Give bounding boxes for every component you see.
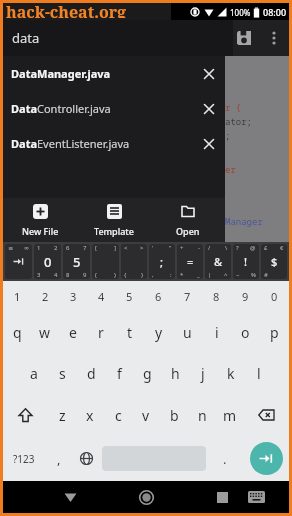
button[interactable] bbox=[244, 394, 289, 436]
button[interactable]: y bbox=[144, 312, 173, 353]
staticText: w bbox=[39, 323, 51, 342]
button[interactable]: ; bbox=[149, 244, 175, 279]
staticText: Template bbox=[94, 225, 134, 237]
button[interactable]: 5 bbox=[63, 244, 90, 279]
button[interactable] bbox=[72, 436, 101, 481]
button[interactable]: a bbox=[19, 353, 48, 394]
button[interactable] bbox=[3, 394, 48, 436]
staticText: 0 bbox=[44, 253, 52, 271]
staticText: n bbox=[198, 406, 207, 425]
button[interactable]: 2 bbox=[31, 281, 59, 312]
button[interactable]: j bbox=[189, 353, 217, 394]
button[interactable]: m bbox=[216, 394, 244, 436]
button[interactable]: e bbox=[59, 312, 87, 353]
button[interactable]: x bbox=[76, 394, 104, 436]
staticText: 4 bbox=[54, 271, 58, 279]
staticText: < bbox=[124, 244, 128, 252]
button[interactable]: 1 bbox=[3, 281, 31, 312]
button[interactable]: s bbox=[48, 353, 77, 394]
button[interactable]: ?123 bbox=[3, 436, 45, 481]
staticText: ) bbox=[114, 271, 116, 279]
button[interactable]: New File bbox=[3, 198, 77, 242]
button[interactable] bbox=[194, 129, 224, 159]
button[interactable]: k bbox=[217, 353, 245, 394]
staticText: > bbox=[140, 244, 144, 252]
button[interactable] bbox=[243, 436, 289, 481]
staticText: = bbox=[187, 254, 194, 269]
staticText: Manager bbox=[225, 215, 263, 227]
button[interactable]: c bbox=[104, 394, 132, 436]
button[interactable]: , bbox=[45, 436, 72, 481]
staticText: e bbox=[69, 323, 77, 342]
button[interactable]: f bbox=[105, 353, 133, 394]
button[interactable] bbox=[194, 59, 224, 89]
staticText: [ bbox=[95, 244, 97, 252]
staticText: ( bbox=[95, 271, 97, 279]
button[interactable]: o bbox=[231, 312, 260, 353]
button[interactable]: g bbox=[133, 353, 161, 394]
button[interactable] bbox=[265, 29, 283, 47]
staticText: 8 bbox=[213, 289, 220, 304]
button[interactable] bbox=[194, 94, 224, 124]
staticText: h bbox=[171, 364, 180, 383]
button[interactable]: ≡ bbox=[5, 244, 32, 279]
button[interactable]: Open bbox=[151, 198, 225, 242]
button[interactable]: 4 bbox=[87, 281, 115, 312]
button[interactable] bbox=[59, 486, 81, 508]
staticText: ator; bbox=[225, 115, 253, 127]
staticText: & bbox=[214, 254, 223, 269]
button[interactable]: [ bbox=[92, 244, 119, 279]
button[interactable]: data bbox=[3, 20, 233, 56]
button[interactable]: 6 bbox=[144, 281, 173, 312]
button[interactable]: 0 bbox=[34, 244, 61, 279]
button[interactable]: q bbox=[3, 312, 31, 353]
button[interactable]: w bbox=[31, 312, 59, 353]
staticText: , bbox=[57, 450, 61, 468]
staticText: a bbox=[30, 364, 38, 383]
button[interactable]: 8 bbox=[202, 281, 231, 312]
staticText: 0 bbox=[271, 289, 278, 304]
button[interactable] bbox=[135, 486, 157, 508]
button[interactable]: b bbox=[160, 394, 188, 436]
button[interactable]: t bbox=[115, 312, 144, 353]
button[interactable] bbox=[211, 486, 233, 508]
button[interactable]: Template bbox=[77, 198, 151, 242]
button[interactable]: 7 bbox=[173, 281, 202, 312]
button[interactable]: v bbox=[132, 394, 160, 436]
staticText: f bbox=[117, 364, 122, 383]
button[interactable]: 9 bbox=[231, 281, 260, 312]
staticText: 8 bbox=[66, 271, 70, 279]
button[interactable]: 3 bbox=[59, 281, 87, 312]
staticText: hack-cheat.org bbox=[6, 1, 127, 18]
button[interactable]: . bbox=[207, 436, 243, 481]
button[interactable]: = bbox=[177, 244, 203, 279]
button[interactable] bbox=[245, 486, 267, 508]
button[interactable]: 0 bbox=[260, 281, 289, 312]
button[interactable]: z bbox=[48, 394, 76, 436]
staticText: _ bbox=[197, 271, 200, 279]
button[interactable] bbox=[232, 26, 256, 50]
button[interactable]: u bbox=[173, 312, 202, 353]
button[interactable]: 5 bbox=[115, 281, 144, 312]
button[interactable]: d bbox=[77, 353, 105, 394]
button[interactable]: p bbox=[260, 312, 289, 353]
staticText: ~ bbox=[236, 271, 240, 279]
staticText: 9 bbox=[83, 271, 87, 279]
staticText: Open bbox=[176, 225, 200, 237]
button[interactable]: & bbox=[205, 244, 231, 279]
staticText: 08:00 bbox=[263, 6, 287, 18]
button[interactable]: DataEventListener.java bbox=[3, 126, 225, 161]
button[interactable]: i bbox=[202, 312, 231, 353]
button[interactable]: DataManager.java bbox=[3, 56, 225, 91]
button[interactable] bbox=[102, 436, 206, 481]
button[interactable]: < bbox=[121, 244, 147, 279]
button[interactable]: r bbox=[87, 312, 115, 353]
button[interactable]: DataController.java bbox=[3, 91, 225, 126]
staticText: \ bbox=[225, 244, 228, 252]
button[interactable]: l bbox=[245, 353, 273, 394]
button[interactable]: h bbox=[161, 353, 189, 394]
staticText: m bbox=[223, 406, 237, 425]
button[interactable]: n bbox=[188, 394, 216, 436]
button[interactable]: ! bbox=[233, 244, 259, 279]
button[interactable]: $ bbox=[261, 244, 287, 279]
